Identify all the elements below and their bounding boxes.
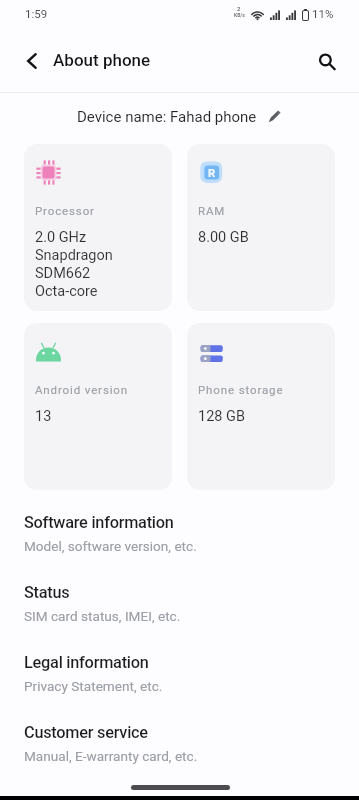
staticText: 128 GB [198,408,245,425]
staticText: KB/s [234,12,245,18]
button[interactable]: Phone storage [187,323,335,490]
staticText: SIM card status, IMEI, etc. [24,608,181,624]
staticText: Customer service [24,723,148,742]
staticText: Privacy Statement, etc. [24,678,163,694]
staticText: Legal information [24,653,149,672]
staticText: RAM [198,204,226,217]
staticText: 11% [312,7,334,20]
staticText: 1:59 [25,7,48,20]
staticText: Device name: Fahad phone [77,108,257,126]
staticText: Manual, E-warranty card, etc. [24,748,198,764]
staticText: Status [24,583,70,602]
staticText: Model, software version, etc. [24,538,197,554]
staticText: 2.0 GHz Snapdragon SDM662 Octa-core [35,229,113,300]
staticText: 2 [237,5,241,12]
staticText: 13 [35,408,52,425]
button[interactable]: Processor [24,144,172,311]
button[interactable]: Customer service [24,715,335,785]
button[interactable]: Search [310,45,342,77]
staticText: About phone [53,50,151,70]
button[interactable]: Android version [24,323,172,490]
button[interactable]: Edit device name [265,108,283,126]
staticText: 8.00 GB [198,229,249,246]
button[interactable]: Software information [24,505,335,575]
button[interactable]: Legal information [24,645,335,715]
button[interactable]: Status [24,575,335,645]
staticText: Phone storage [198,383,284,396]
button[interactable]: R [187,144,335,311]
staticText: Processor [35,204,95,217]
button[interactable]: Back [16,45,48,77]
staticText: Software information [24,513,174,532]
staticText: R [208,167,216,180]
staticText: Android version [35,383,128,396]
